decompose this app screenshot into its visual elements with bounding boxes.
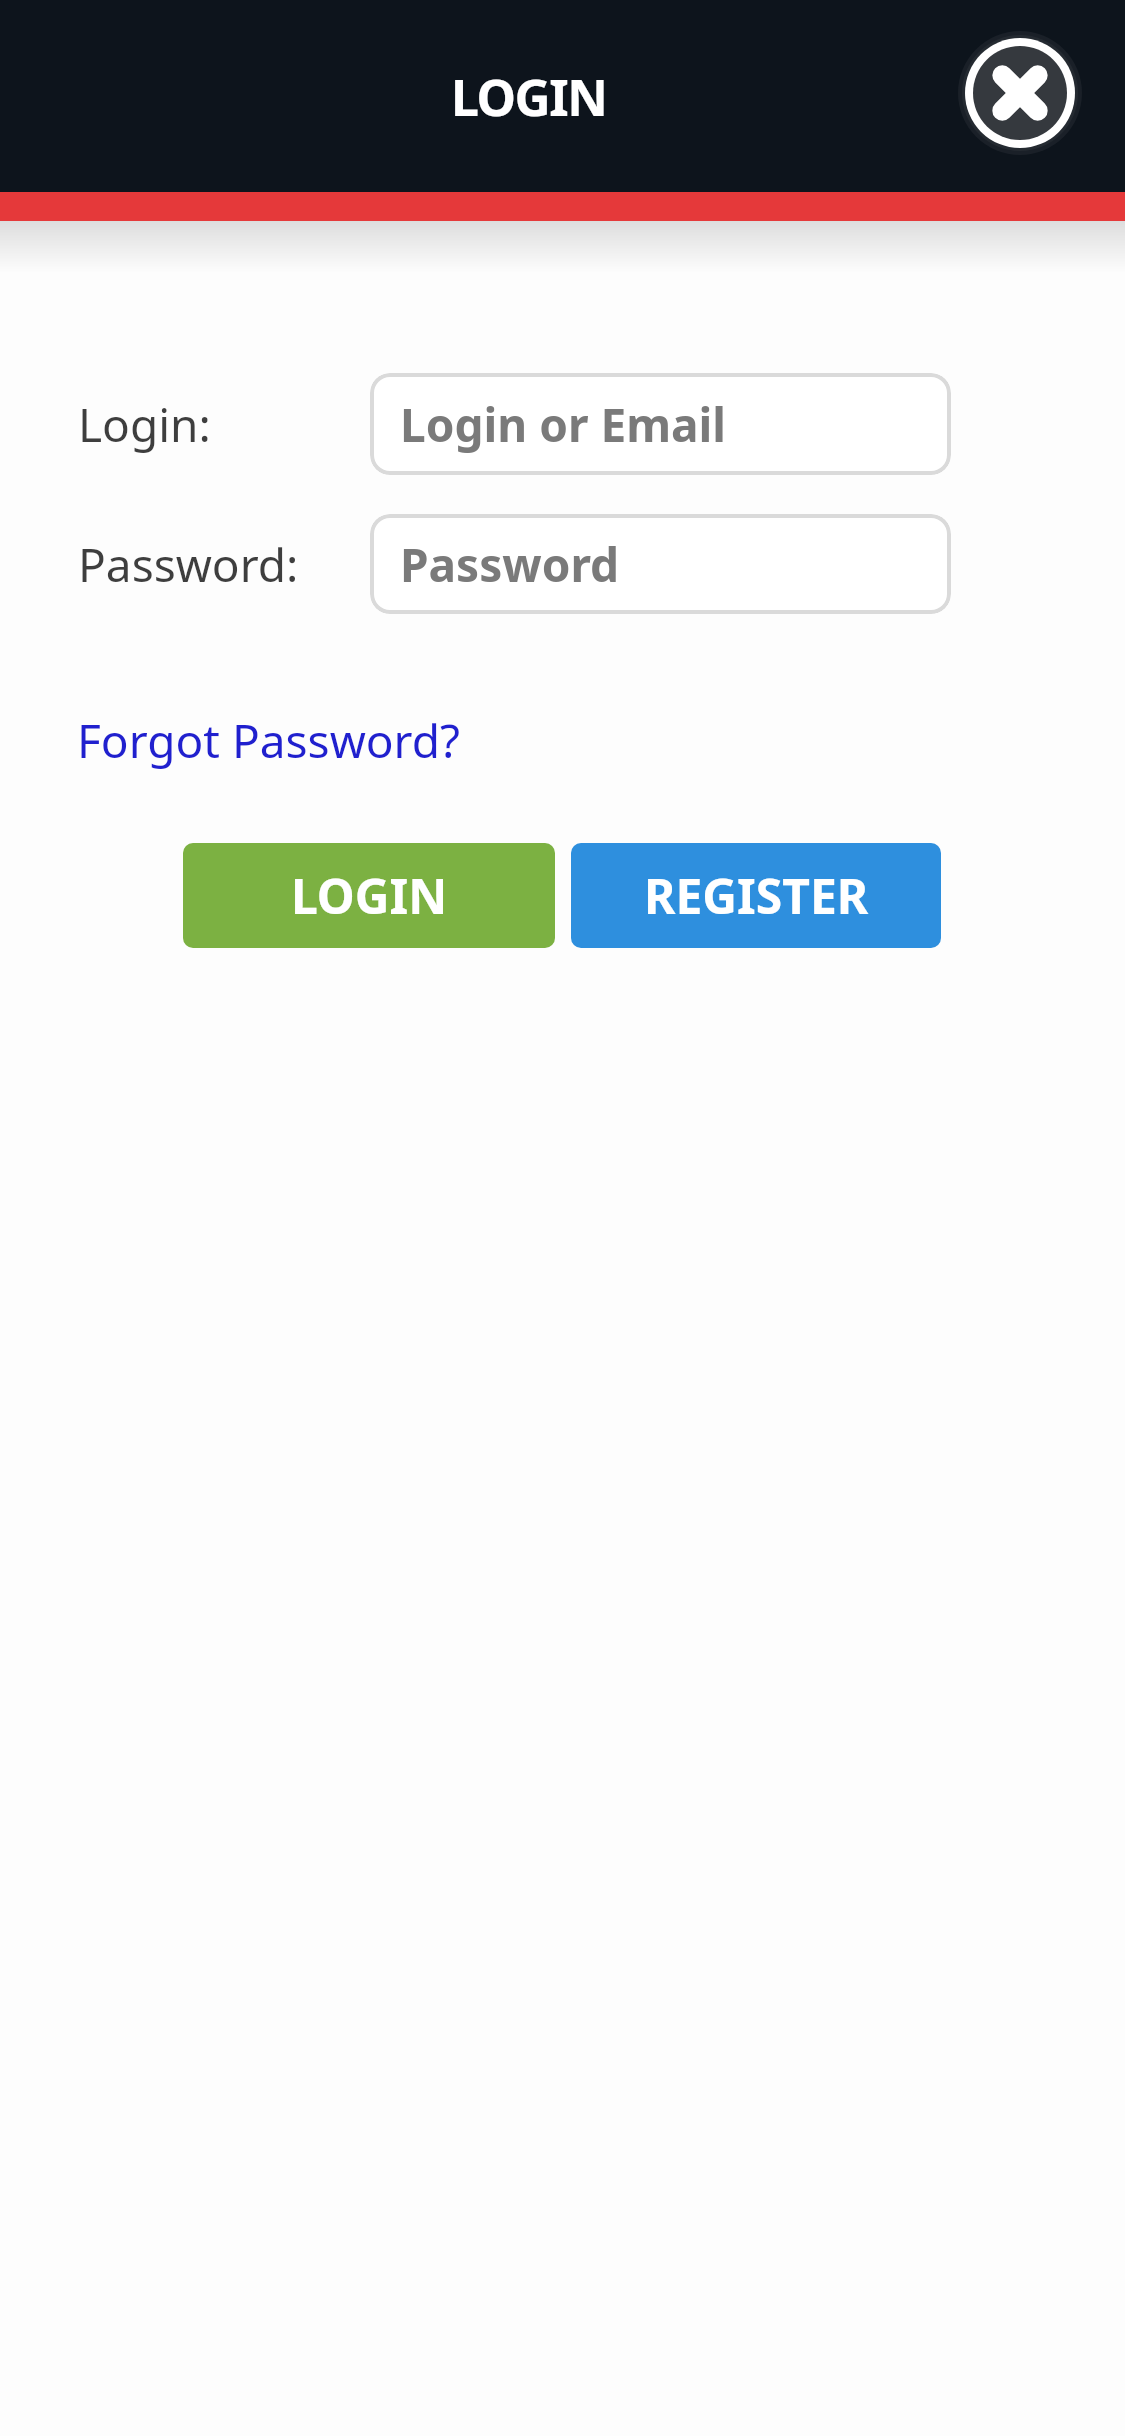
staticText: Login: bbox=[78, 393, 211, 456]
staticText: Password: bbox=[78, 533, 299, 596]
staticText: Login or Email bbox=[400, 393, 727, 456]
staticText: LOGIN bbox=[451, 63, 607, 131]
button[interactable]: Login or Email bbox=[370, 373, 951, 475]
staticText: Password bbox=[400, 533, 620, 596]
staticText: Forgot Password? bbox=[77, 709, 460, 772]
button[interactable]: Forgot Password? bbox=[77, 700, 460, 780]
button[interactable]: REGISTER bbox=[571, 843, 941, 948]
button[interactable] bbox=[958, 31, 1082, 155]
staticText: REGISTER bbox=[644, 863, 869, 928]
staticText: LOGIN bbox=[291, 863, 448, 928]
button[interactable]: LOGIN bbox=[183, 843, 555, 948]
button[interactable]: Password bbox=[370, 514, 951, 614]
